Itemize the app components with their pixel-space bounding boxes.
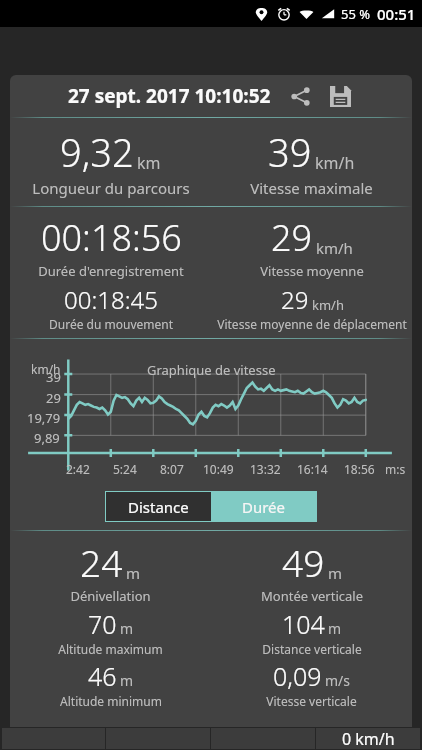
staticText: Longueur du parcours [32,178,190,198]
staticText: 2:42 [66,461,90,477]
staticText: 16:14 [297,461,328,477]
staticText: 29 [271,213,313,262]
staticText: m [120,671,134,690]
staticText: m/s [325,671,351,690]
staticText: Dénivellation [70,587,151,605]
staticText: m [120,619,134,638]
staticText: 9,89 [34,429,60,447]
staticText: m [328,563,343,583]
staticText: 70 [88,607,117,641]
staticText: 39 [46,368,61,386]
staticText: km/h [315,152,355,174]
staticText: Durée [242,497,286,517]
staticText: m:s [385,461,406,477]
staticText: Vitesse verticale [266,693,357,709]
staticText: 00:51 [377,4,416,24]
staticText: Durée d'enregistrement [38,262,184,280]
staticText: 18:56 [344,461,375,477]
staticText: 104 [282,607,325,641]
button[interactable]: Distance [105,491,211,522]
staticText: 39 [268,126,312,178]
staticText: Vitesse moyenne de déplacement [217,316,407,332]
staticText: 55 % [341,5,371,23]
staticText: km/h [31,361,61,377]
staticText: 00:18:45 [64,283,158,316]
staticText: 13:32 [250,461,281,477]
staticText: km/h [316,238,353,258]
staticText: 00:18:56 [41,213,182,262]
staticText: 24 [80,537,123,587]
staticText: m [126,563,141,583]
button[interactable]: Share [285,81,315,111]
staticText: 0,09 [273,659,322,693]
staticText: 5:24 [113,461,137,477]
staticText: Distance [128,497,189,517]
staticText: 19,79 [27,409,61,427]
staticText: 27 sept. 2017 10:10:52 [68,83,271,109]
staticText: m [328,619,342,638]
staticText: 9,32 [60,126,134,178]
staticText: Durée du mouvement [49,316,173,332]
staticText: 46 [88,659,117,693]
staticText: 10:49 [203,461,234,477]
button[interactable]: Durée [211,491,317,522]
staticText: Graphique de vitesse [147,361,276,379]
staticText: Montée verticale [261,587,363,605]
staticText: Distance verticale [262,641,362,657]
staticText: Altitude maximum [58,641,163,657]
staticText: km/h [312,296,344,314]
staticText: Vitesse maximale [250,178,373,198]
staticText: 29 [46,389,61,407]
staticText: 0 km/h [342,728,395,749]
button[interactable]: Save [325,81,355,111]
staticText: 29 [281,283,309,316]
button[interactable]: 0 km/h [316,728,420,749]
staticText: Vitesse moyenne [260,262,364,280]
staticText: 8:07 [160,461,184,477]
staticText: 49 [282,537,325,587]
staticText: Altitude minimum [60,693,162,709]
staticText: km [137,152,161,174]
